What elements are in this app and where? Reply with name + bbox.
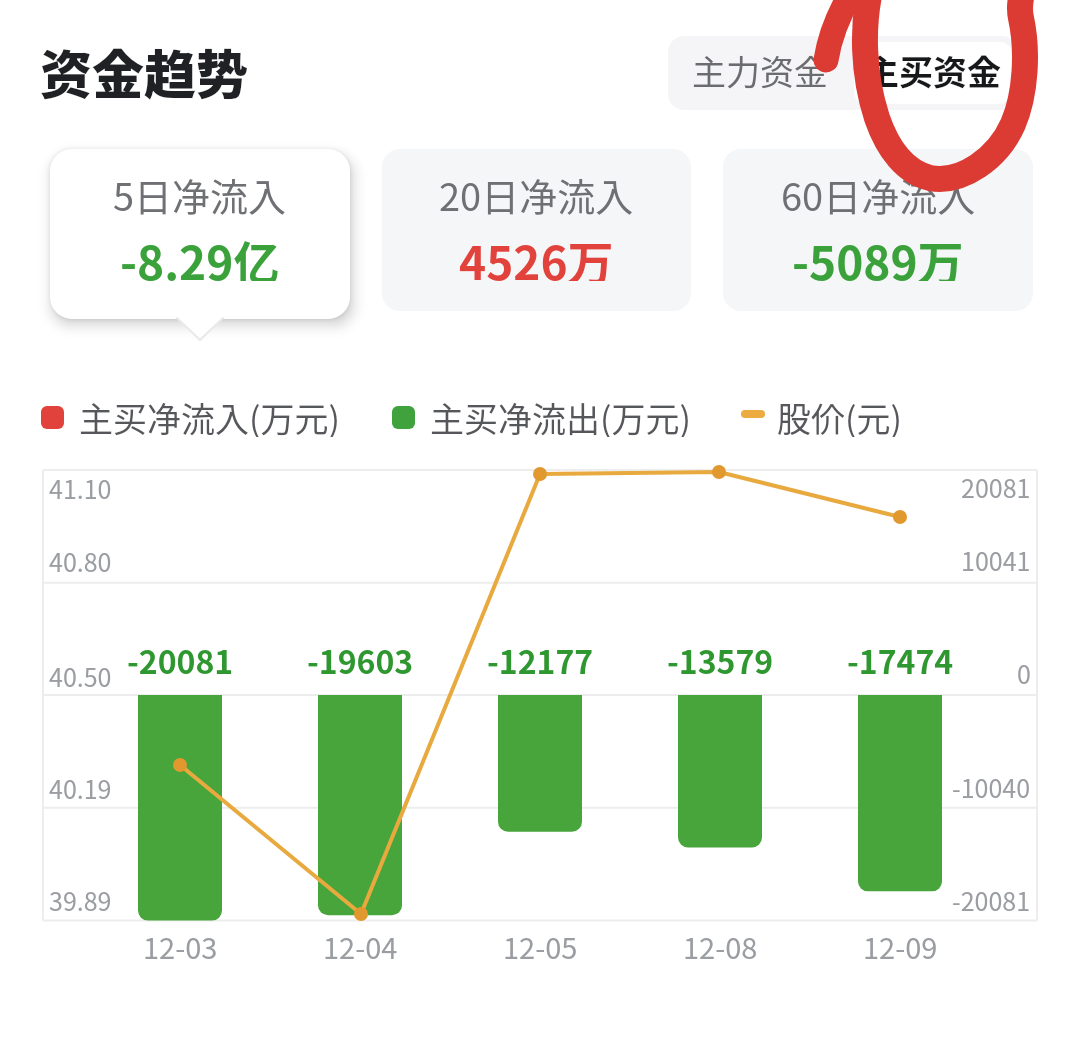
- staticText: 资金趋势: [40, 34, 249, 104]
- staticText: -20081: [127, 637, 234, 677]
- staticText: 0: [1017, 655, 1031, 691]
- staticText: 40.50: [49, 658, 112, 694]
- button[interactable]: [50, 149, 350, 319]
- staticText: -8.29亿: [120, 227, 280, 281]
- button[interactable]: [382, 149, 691, 311]
- staticText: 5日净流入: [113, 167, 287, 219]
- staticText: 12-04: [323, 925, 398, 965]
- staticText: 40.80: [49, 543, 112, 579]
- staticText: 股价(元): [777, 393, 902, 437]
- staticText: -10040: [952, 769, 1031, 805]
- button[interactable]: [854, 42, 1012, 104]
- staticText: 39.89: [49, 882, 112, 918]
- staticText: -17474: [847, 637, 954, 677]
- staticText: 主买净流出(万元): [430, 393, 691, 437]
- staticText: 10041: [961, 542, 1031, 578]
- button[interactable]: [723, 149, 1033, 311]
- staticText: 12-08: [683, 925, 758, 965]
- staticText: 4526万: [459, 227, 614, 281]
- staticText: 12-03: [143, 925, 218, 965]
- staticText: 主力资金: [692, 46, 828, 95]
- staticText: 主买净流入(万元): [79, 393, 340, 437]
- staticText: -12177: [487, 637, 594, 677]
- staticText: 20081: [961, 469, 1031, 505]
- staticText: 12-09: [863, 925, 938, 965]
- staticText: 20日净流入: [439, 167, 634, 219]
- staticText: 主买资金: [865, 46, 1001, 95]
- staticText: -19603: [307, 637, 414, 677]
- staticText: -5089万: [792, 227, 964, 281]
- staticText: 41.10: [49, 470, 112, 506]
- staticText: -13579: [667, 637, 774, 677]
- staticText: 12-05: [503, 925, 578, 965]
- button[interactable]: 主力资金: [668, 33, 852, 107]
- staticText: -20081: [952, 882, 1031, 918]
- staticText: 60日净流入: [781, 167, 976, 219]
- staticText: 40.19: [49, 770, 112, 806]
